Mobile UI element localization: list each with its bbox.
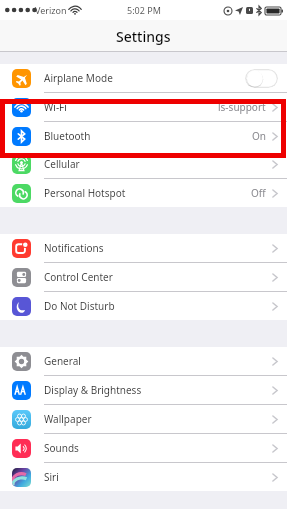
staticText: 5:02 PM <box>127 4 161 16</box>
staticText: Off <box>251 186 266 200</box>
staticText: Control Center <box>44 270 272 284</box>
button[interactable]: Cellular <box>0 150 287 178</box>
button[interactable]: Airplane Mode toggle <box>245 69 278 88</box>
staticText: Verizon <box>35 4 67 16</box>
staticText: Airplane Mode <box>44 71 245 85</box>
staticText: Settings <box>116 27 171 46</box>
staticText: Display & Brightness <box>44 383 272 397</box>
staticText: General <box>44 354 272 368</box>
staticText: Personal Hotspot <box>44 186 251 200</box>
staticText: Wi-Fi <box>44 100 218 114</box>
button[interactable]: Control Center <box>0 263 287 291</box>
staticText: Notifications <box>44 241 272 255</box>
button[interactable]: Do Not Disturb <box>0 292 287 320</box>
button[interactable]: Bluetooth <box>0 122 287 150</box>
staticText: Do Not Disturb <box>44 299 272 313</box>
staticText: Wallpaper <box>44 412 272 426</box>
button[interactable]: Wallpaper <box>0 405 287 433</box>
button[interactable]: Siri <box>0 463 287 491</box>
button[interactable]: Notifications <box>0 234 287 262</box>
staticText: ls-support <box>218 100 266 114</box>
staticText: Cellular <box>44 157 272 171</box>
staticText: Siri <box>44 470 272 484</box>
staticText: Sounds <box>44 441 272 455</box>
button[interactable]: Airplane Mode <box>0 64 287 92</box>
staticText: Bluetooth <box>44 129 252 143</box>
button[interactable]: Personal Hotspot <box>0 179 287 207</box>
button[interactable]: Sounds <box>0 434 287 462</box>
button[interactable]: Wi-Fi <box>0 93 287 121</box>
button[interactable]: Display & Brightness <box>0 376 287 404</box>
staticText: On <box>252 129 266 143</box>
button[interactable]: General <box>0 347 287 375</box>
